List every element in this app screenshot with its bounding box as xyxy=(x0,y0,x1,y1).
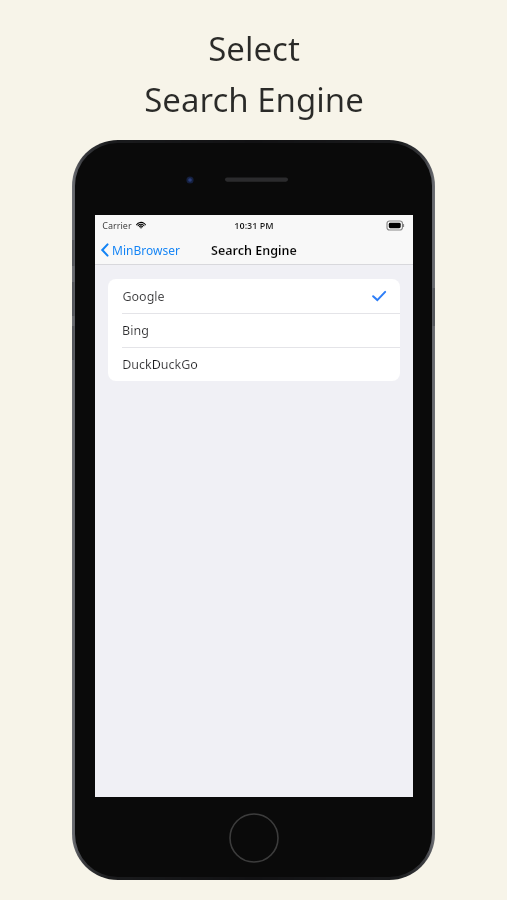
button[interactable]: Bing xyxy=(108,313,400,347)
staticText: Search Engine xyxy=(211,242,297,259)
staticText: Carrier xyxy=(102,219,132,231)
button[interactable]: DuckDuckGo xyxy=(108,347,400,381)
staticText: 10:31 PM xyxy=(234,219,274,231)
staticText: Google xyxy=(122,288,165,305)
staticText: Bing xyxy=(122,322,149,339)
staticText: Select xyxy=(208,26,300,71)
staticText: MinBrowser xyxy=(112,242,180,258)
other: Selected xyxy=(372,290,386,302)
staticText: DuckDuckGo xyxy=(122,356,198,373)
other: Home xyxy=(229,813,279,863)
button[interactable]: MinBrowser xyxy=(95,238,188,262)
button[interactable]: Google xyxy=(108,279,400,313)
staticText: Search Engine xyxy=(144,77,364,122)
